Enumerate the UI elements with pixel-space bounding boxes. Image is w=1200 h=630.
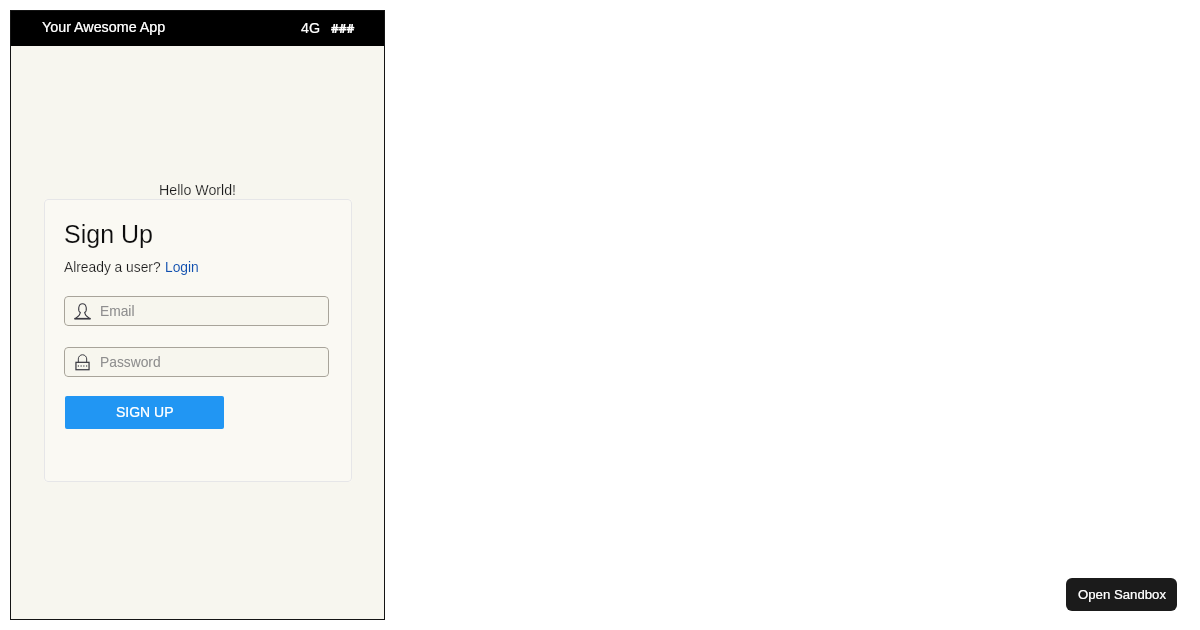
staticText: Email <box>100 304 135 319</box>
staticText: Sign Up <box>64 220 153 248</box>
button[interactable]: SIGN UP <box>65 396 224 429</box>
staticText: Open Sandbox <box>1078 587 1166 602</box>
button[interactable]: Password <box>64 347 329 377</box>
staticText: ### <box>331 19 355 37</box>
staticText: Already a user? <box>64 260 165 275</box>
button[interactable]: Login <box>165 260 199 275</box>
staticText: 4G <box>301 20 321 36</box>
other: Password <box>74 354 91 371</box>
staticText: Your Awesome App <box>42 19 166 35</box>
button[interactable]: Open Sandbox <box>1066 578 1177 611</box>
staticText: Login <box>165 260 199 275</box>
staticText: Hello World! <box>10 182 385 198</box>
other: Email <box>74 303 91 320</box>
button[interactable]: Email <box>64 296 329 326</box>
staticText: Password <box>100 355 161 370</box>
button[interactable]: Your Awesome App <box>42 20 166 36</box>
staticText: SIGN UP <box>116 404 174 420</box>
